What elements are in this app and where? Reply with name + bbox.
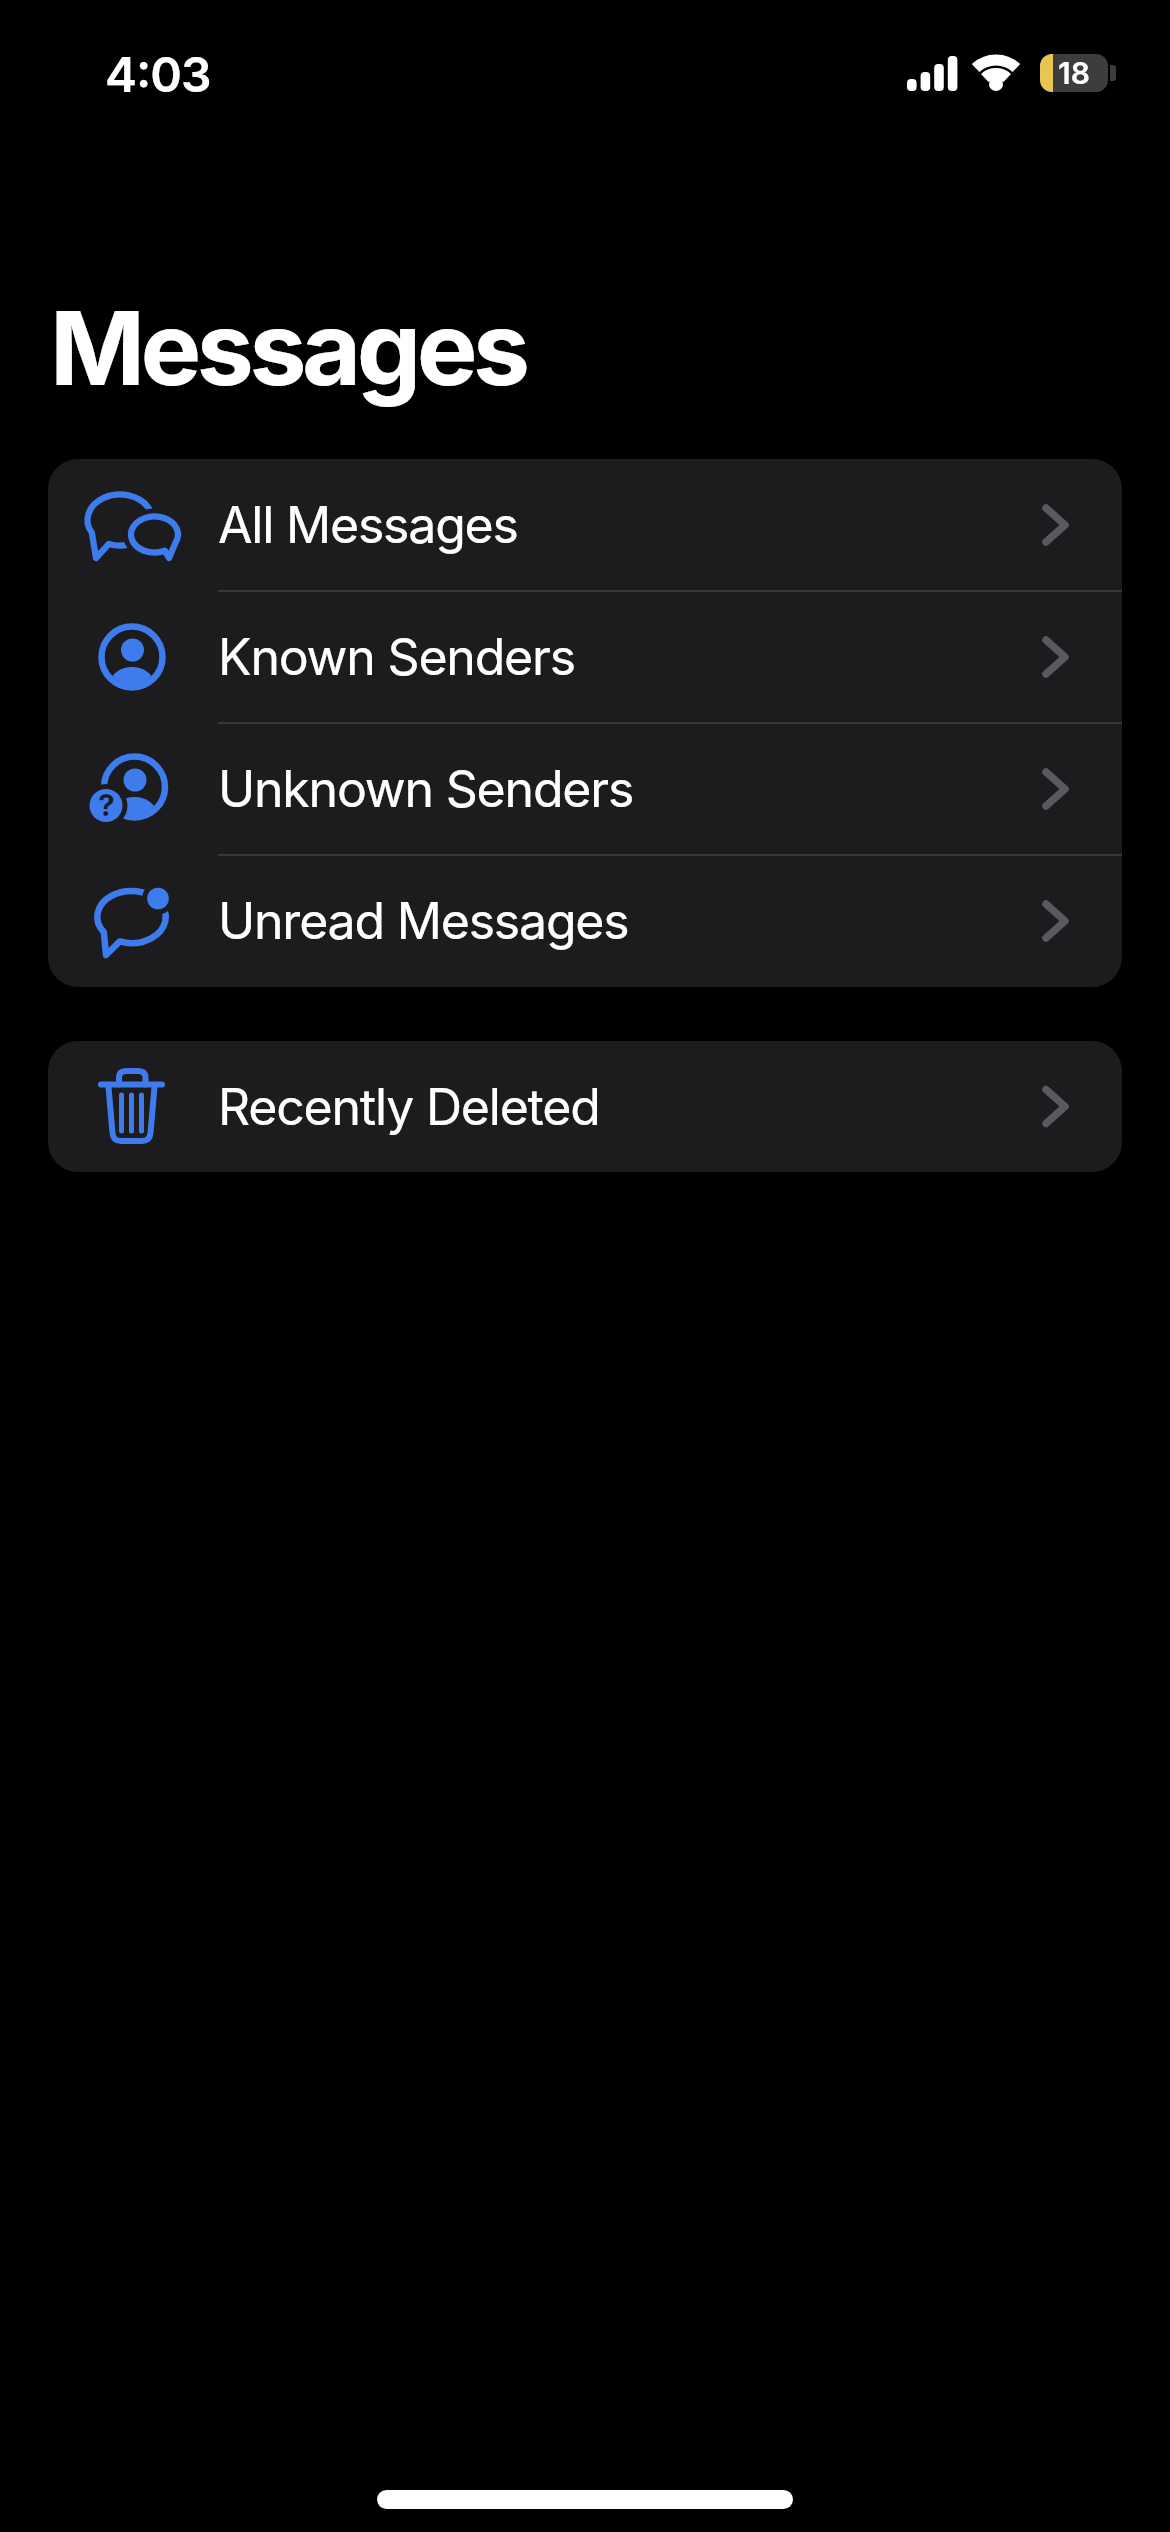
button[interactable]: All Messages (48, 459, 1122, 591)
staticText: Unknown Senders (218, 759, 634, 819)
button[interactable]: Unknown Senders (48, 723, 1122, 855)
staticText: Recently Deleted (218, 1077, 600, 1137)
staticText: Unread Messages (218, 891, 629, 951)
staticText: 18 (1058, 55, 1090, 91)
button[interactable]: Unread Messages (48, 855, 1122, 987)
staticText: Messages (50, 286, 526, 409)
staticText: Known Senders (218, 627, 575, 687)
button[interactable]: Recently Deleted (48, 1041, 1122, 1172)
staticText: ? (98, 787, 115, 823)
button[interactable]: Known Senders (48, 591, 1122, 723)
staticText: 4:03 (105, 45, 211, 103)
staticText: All Messages (218, 495, 518, 555)
